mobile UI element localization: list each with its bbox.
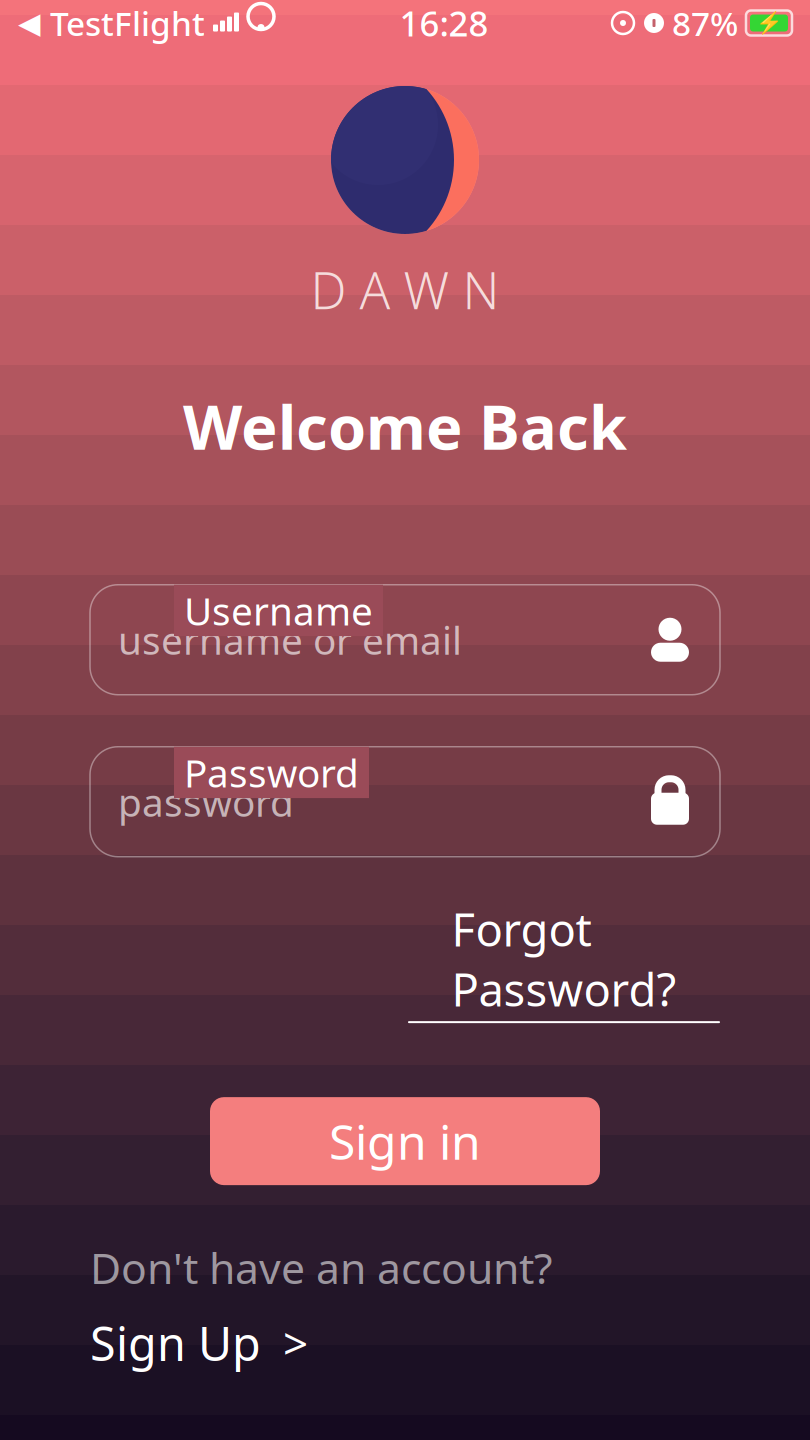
staticText: Sign Up xyxy=(90,1312,261,1374)
staticText: D A W N xyxy=(310,256,499,323)
button[interactable]: Sign in xyxy=(210,1097,600,1185)
button[interactable]: Sign Up xyxy=(90,1296,720,1374)
staticText: ⚡ xyxy=(755,11,782,35)
staticText: password xyxy=(118,776,294,827)
staticText: Username xyxy=(184,585,373,636)
staticText: > xyxy=(261,1314,308,1372)
staticText: 87% xyxy=(672,1,738,45)
staticText: Don't have an account? xyxy=(90,1239,553,1296)
staticText: Password xyxy=(184,747,359,798)
staticText: 16:28 xyxy=(399,0,488,46)
button[interactable]: username or email xyxy=(90,585,720,695)
staticText: ◀ xyxy=(18,6,41,40)
staticText: username or email xyxy=(118,614,462,665)
button[interactable]: Forgot Password? xyxy=(408,899,720,1023)
staticText: Sign in xyxy=(329,1109,481,1173)
staticText: TestFlight xyxy=(41,1,205,45)
staticText: Forgot Password? xyxy=(451,899,676,1019)
button[interactable]: password xyxy=(90,747,720,857)
staticText: Welcome Back xyxy=(183,385,627,467)
